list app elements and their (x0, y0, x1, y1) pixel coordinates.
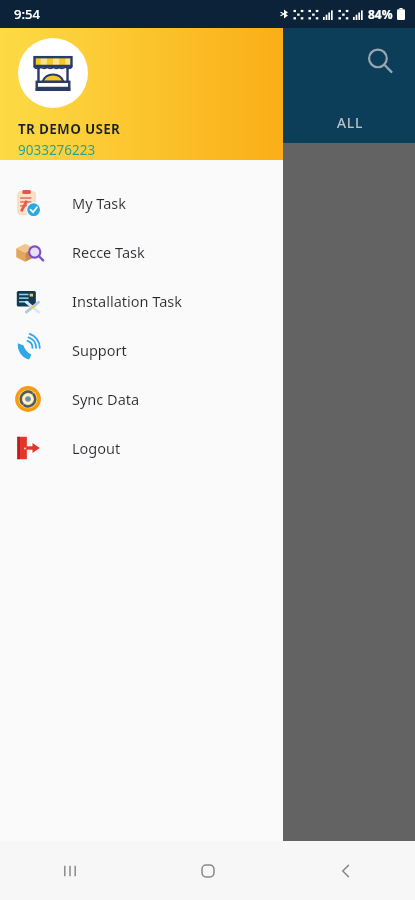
button[interactable]: Logout (0, 423, 283, 472)
button[interactable]: Installation Task (0, 276, 283, 325)
staticText: Recce Task (72, 242, 145, 262)
staticText: Logout (72, 438, 121, 458)
staticText: TR DEMO USER (18, 120, 121, 138)
staticText: My Task (72, 193, 127, 213)
button[interactable]: Sync Data (0, 374, 283, 423)
button[interactable]: My Task (0, 178, 283, 227)
staticText: 9033276223 (18, 141, 96, 159)
staticText: Sync Data (72, 389, 140, 409)
staticText: Installation Task (72, 291, 183, 311)
button[interactable]: Support (0, 325, 283, 374)
staticText: 9:54 (14, 5, 40, 23)
button[interactable]: ALL (285, 101, 415, 143)
button[interactable]: Recce Task (0, 227, 283, 276)
button[interactable]: Search (363, 44, 397, 78)
button[interactable]: Home (139, 841, 277, 900)
button[interactable]: Recents (0, 841, 139, 900)
staticText: Support (72, 340, 127, 360)
button[interactable]: Back (277, 841, 415, 900)
staticText: ALL (337, 113, 364, 132)
staticText: 84% (368, 6, 393, 22)
